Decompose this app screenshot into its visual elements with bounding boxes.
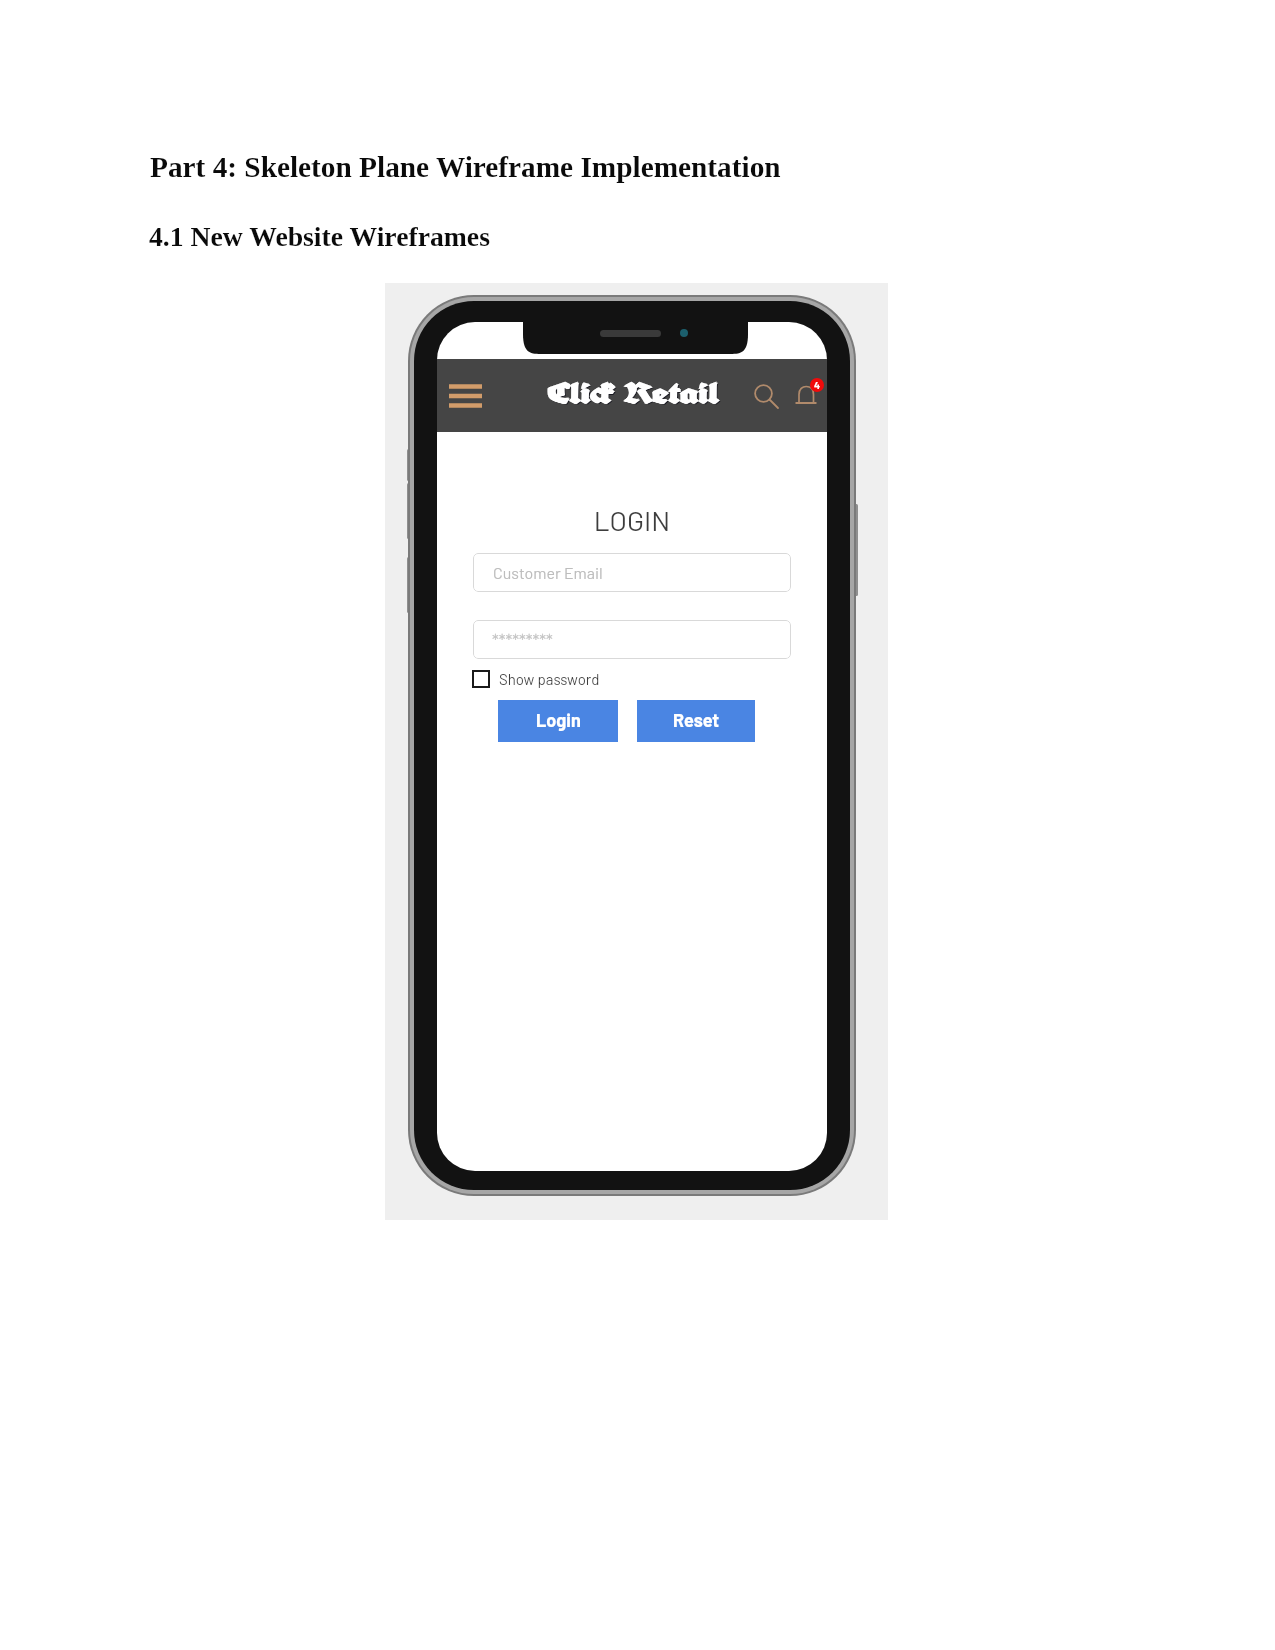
button[interactable]: Login [498, 700, 618, 742]
staticText: Part 4: Skeleton Plane Wireframe Impleme… [150, 151, 781, 183]
staticText: Customer Email [493, 563, 603, 582]
button[interactable]: Open navigation menu [440, 372, 490, 419]
staticText: Click Retail [548, 373, 720, 411]
staticText: 4 [814, 379, 821, 391]
button[interactable]: ********* [473, 620, 791, 659]
button[interactable]: Notifications [784, 373, 827, 417]
staticText: Login [536, 709, 581, 731]
staticText: Click Retail [547, 374, 719, 412]
staticText: Reset [673, 709, 720, 731]
staticText: Show password [499, 670, 600, 688]
staticText: LOGIN [437, 503, 827, 537]
button[interactable]: Customer Email [473, 553, 791, 592]
staticText: ********* [492, 630, 553, 650]
button[interactable]: Search [745, 375, 789, 419]
staticText: Click Retail [548, 375, 720, 413]
staticText: 4.1 New Website Wireframes [149, 221, 490, 252]
staticText: Click Retail [548, 374, 720, 412]
button[interactable]: Show password [472, 670, 600, 688]
button[interactable]: Reset [637, 700, 755, 742]
staticText: Click Retail [550, 375, 722, 413]
staticText: Click Retail [549, 374, 721, 412]
